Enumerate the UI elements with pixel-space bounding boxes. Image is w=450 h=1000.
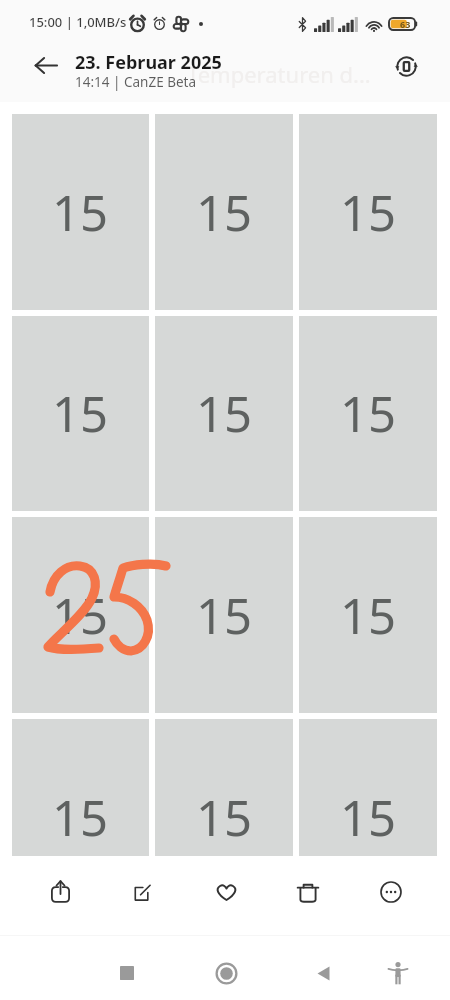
button[interactable]: Accessibility xyxy=(376,951,420,995)
button[interactable]: Auto rotate xyxy=(378,38,434,94)
button[interactable]: 15 xyxy=(155,114,293,310)
button[interactable]: 15 xyxy=(299,316,437,511)
button[interactable]: Recents xyxy=(105,951,149,995)
staticText: 63 xyxy=(400,18,411,30)
button[interactable]: 15 xyxy=(299,719,437,856)
staticText: 15 xyxy=(52,784,109,851)
button[interactable]: 15 xyxy=(12,719,149,856)
button[interactable]: 15 xyxy=(299,517,437,713)
staticText: Temperaturen d... xyxy=(187,59,371,89)
button[interactable]: 15 xyxy=(155,316,293,511)
staticText: 15 xyxy=(340,179,397,246)
staticText: 23. Februar 2025 xyxy=(75,50,222,75)
button[interactable]: Favorite xyxy=(198,864,254,920)
staticText: 15 xyxy=(52,582,109,649)
staticText: 15 xyxy=(52,179,109,246)
button[interactable]: Home xyxy=(204,951,248,995)
staticText: 15 xyxy=(52,380,109,447)
button[interactable]: More options xyxy=(363,864,419,920)
button[interactable]: Back xyxy=(301,951,345,995)
staticText: 15 xyxy=(196,784,253,851)
staticText: 15 xyxy=(340,784,397,851)
staticText: 15 xyxy=(340,582,397,649)
button[interactable]: 15 xyxy=(299,114,437,310)
button[interactable]: Delete xyxy=(280,864,336,920)
button[interactable]: 15 xyxy=(155,517,293,713)
staticText: 15 xyxy=(340,380,397,447)
button[interactable]: 15 xyxy=(12,316,149,511)
button[interactable]: 15 xyxy=(12,517,149,713)
staticText: 15 xyxy=(196,380,253,447)
button[interactable]: Share xyxy=(32,863,88,919)
staticText: 15:00 | 1,0MB/s xyxy=(29,13,127,31)
button[interactable]: Back xyxy=(17,37,74,94)
button[interactable]: Edit xyxy=(114,864,170,920)
staticText: 15 xyxy=(196,179,253,246)
button[interactable]: 15 xyxy=(12,114,149,310)
staticText: 15 xyxy=(196,582,253,649)
staticText: 14:14 | CanZE Beta xyxy=(75,73,196,91)
button[interactable]: 15 xyxy=(155,719,293,856)
